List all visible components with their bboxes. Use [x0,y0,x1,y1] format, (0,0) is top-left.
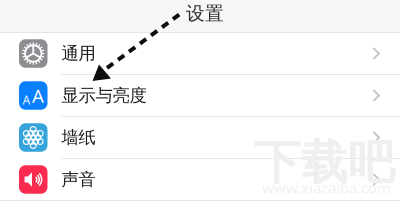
staticText: 下载吧 [254,134,395,191]
button[interactable]: 声音 [0,159,400,200]
staticText: A [22,92,30,108]
staticText: A [32,83,44,108]
staticText: 声音 [61,169,95,190]
staticText: 墙纸 [61,127,95,148]
button[interactable]: A [0,75,400,116]
staticText: 设置 [186,2,224,25]
staticText: 显示与亮度 [61,85,146,106]
button[interactable]: 通用 [0,33,400,74]
button[interactable]: 墙纸 [0,117,400,158]
staticText: www.xiazaiba.com [262,178,391,197]
staticText: 通用 [61,43,95,64]
